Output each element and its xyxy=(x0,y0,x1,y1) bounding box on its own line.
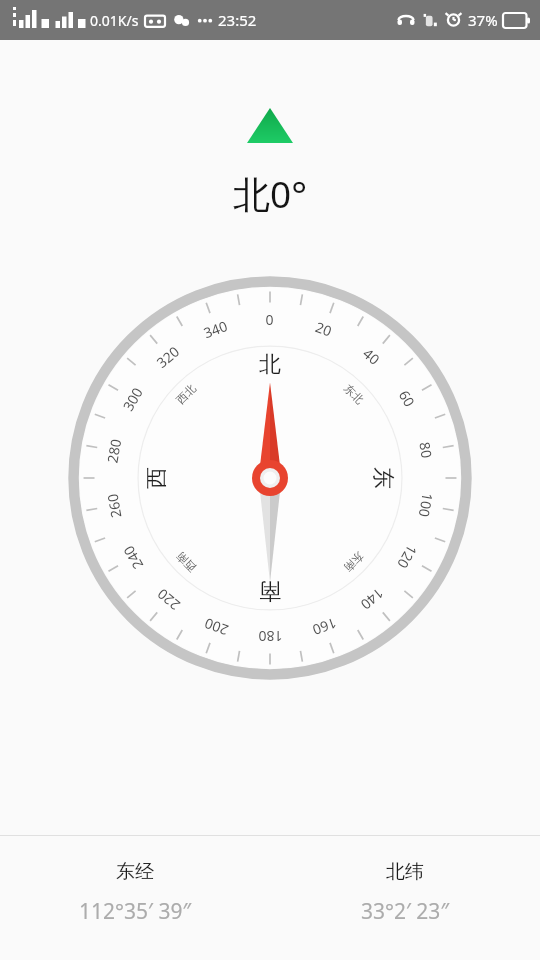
other: North heading indicator xyxy=(247,108,293,143)
staticText: 北纬 xyxy=(386,860,424,884)
staticText: 北0° xyxy=(0,168,540,219)
staticText: 37% xyxy=(468,10,498,30)
staticText: 0.01K/s xyxy=(90,11,139,30)
staticText: 112°35′ 39″ xyxy=(79,897,191,926)
staticText: 33°2′ 23″ xyxy=(361,897,449,926)
button[interactable]: 北纬 xyxy=(270,860,540,926)
button[interactable]: 东经 xyxy=(0,860,270,926)
staticText: 23:52 xyxy=(218,10,257,30)
staticText: 东经 xyxy=(116,860,154,884)
